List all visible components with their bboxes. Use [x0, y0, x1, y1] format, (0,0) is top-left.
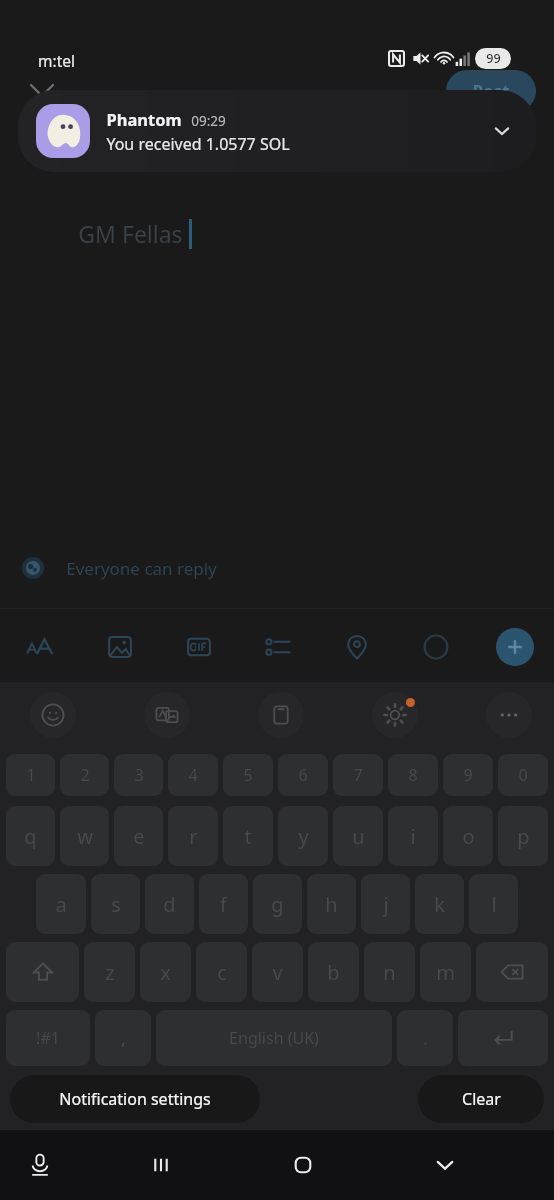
button[interactable]: Add post [496, 628, 534, 666]
button[interactable]: k [415, 874, 464, 934]
button[interactable]: More options [486, 692, 532, 738]
button[interactable]: d [145, 874, 194, 934]
button[interactable]: w [60, 806, 109, 866]
button[interactable]: Everyone can reply [0, 546, 554, 590]
button[interactable]: a [36, 874, 86, 934]
button[interactable]: l [469, 874, 518, 934]
staticText: Tue 10 Mar [116, 120, 216, 146]
staticText: h [325, 891, 338, 918]
staticText: d [163, 891, 176, 918]
staticText: English (UK) [229, 1027, 319, 1049]
staticText: 0 [518, 764, 528, 786]
button[interactable]: Home [277, 1139, 329, 1191]
staticText: 7 [353, 764, 363, 786]
button[interactable]: Clipboard [258, 692, 304, 738]
button[interactable]: Translate [144, 692, 190, 738]
button[interactable]: Keyboard settings [372, 692, 418, 738]
staticText: Clear [462, 1088, 501, 1110]
button[interactable]: 9 [443, 754, 493, 796]
button[interactable]: 0 [498, 754, 548, 796]
staticText: c [217, 959, 227, 986]
staticText: Phantom [106, 108, 182, 130]
button[interactable]: s [91, 874, 140, 934]
staticText: r [189, 823, 198, 850]
button[interactable]: Character count [414, 625, 458, 669]
staticText: 1 [26, 764, 36, 786]
button[interactable]: 8 [388, 754, 438, 796]
button[interactable]: Recent apps [135, 1139, 187, 1191]
staticText: . [423, 1026, 428, 1051]
staticText: f [220, 891, 227, 918]
button[interactable]: t [223, 806, 273, 866]
button[interactable]: n [364, 942, 415, 1002]
staticText: GM Fellas [78, 218, 183, 249]
button[interactable]: f [199, 874, 248, 934]
staticText: 09:29 [191, 112, 226, 130]
button[interactable]: !#1 [6, 1010, 90, 1066]
button[interactable]: Enter [458, 1010, 548, 1066]
staticText: , [121, 1026, 126, 1051]
button[interactable]: h [307, 874, 356, 934]
staticText: 9 [463, 764, 473, 786]
button[interactable]: e [114, 806, 163, 866]
button[interactable]: m [420, 942, 471, 1002]
button[interactable]: Notification settings [10, 1075, 260, 1123]
button[interactable]: c [196, 942, 247, 1002]
staticText: x [160, 959, 171, 986]
button[interactable]: Close [20, 74, 64, 118]
button[interactable]: Add GIF [177, 625, 221, 669]
button[interactable]: 5 [223, 754, 273, 796]
button[interactable]: 7 [333, 754, 383, 796]
staticText: j [383, 891, 389, 918]
staticText: z [105, 959, 115, 986]
button[interactable]: o [443, 806, 493, 866]
staticText: 6 [298, 764, 308, 786]
button[interactable]: p [498, 806, 548, 866]
button[interactable]: u [333, 806, 383, 866]
staticText: g [271, 891, 284, 918]
staticText: k [434, 891, 445, 918]
staticText: 5 [243, 764, 253, 786]
button[interactable]: g [253, 874, 302, 934]
staticText: Post [472, 80, 510, 103]
button[interactable]: Backspace [476, 942, 548, 1002]
button[interactable]: 6 [278, 754, 328, 796]
staticText: w [77, 823, 93, 850]
button[interactable]: 4 [168, 754, 218, 796]
button[interactable]: 3 [114, 754, 163, 796]
button[interactable]: Phantom [18, 90, 536, 172]
button[interactable]: Voice input [14, 1139, 66, 1191]
button[interactable]: v [252, 942, 303, 1002]
button[interactable]: 2 [60, 754, 109, 796]
button[interactable]: Add location [335, 625, 379, 669]
staticText: n [383, 959, 396, 986]
button[interactable]: Emoji [30, 692, 76, 738]
button[interactable]: Add photo [98, 625, 142, 669]
button[interactable]: 1 [6, 754, 55, 796]
staticText: l [491, 891, 497, 918]
button[interactable]: z [84, 942, 135, 1002]
button[interactable]: English (UK) [156, 1010, 392, 1066]
staticText: 4 [188, 764, 198, 786]
button[interactable]: y [278, 806, 328, 866]
button[interactable]: Hide keyboard [419, 1139, 471, 1191]
button[interactable]: Post [446, 70, 536, 112]
button[interactable]: x [140, 942, 191, 1002]
staticText: q [24, 823, 37, 850]
staticText: 3 [134, 764, 144, 786]
button[interactable]: q [6, 806, 55, 866]
button[interactable]: Text formatting [18, 625, 62, 669]
staticText: e [133, 823, 145, 850]
button[interactable]: j [361, 874, 410, 934]
button[interactable]: Shift [6, 942, 79, 1002]
button[interactable]: Add poll [256, 625, 300, 669]
button[interactable]: Clear [418, 1075, 544, 1123]
button[interactable]: b [308, 942, 359, 1002]
button[interactable]: Expand notification [482, 111, 522, 151]
staticText: 8 [408, 764, 418, 786]
staticText: u [352, 823, 365, 850]
